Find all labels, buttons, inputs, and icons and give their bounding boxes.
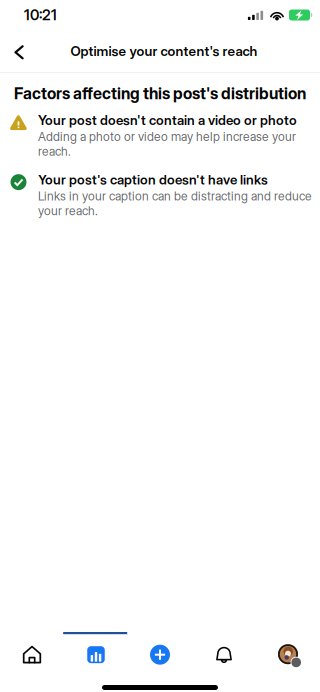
staticText: 10:21 <box>24 6 57 24</box>
button[interactable]: Create <box>128 632 192 677</box>
staticText: Adding a photo or video may help increas… <box>38 129 296 159</box>
button[interactable]: Notifications <box>192 632 256 677</box>
button[interactable]: Profile <box>256 632 320 677</box>
staticText: Your post's caption doesn't have links <box>38 172 268 188</box>
staticText: Optimise your content's reach <box>70 43 257 59</box>
staticText: Your post doesn't contain a video or pho… <box>38 112 297 128</box>
staticText: Factors affecting this post's distributi… <box>14 84 306 103</box>
button[interactable]: Home <box>0 632 64 677</box>
button[interactable]: Back <box>0 31 38 71</box>
staticText: Links in your caption can be distracting… <box>38 189 312 218</box>
button[interactable]: Insights <box>64 632 128 677</box>
